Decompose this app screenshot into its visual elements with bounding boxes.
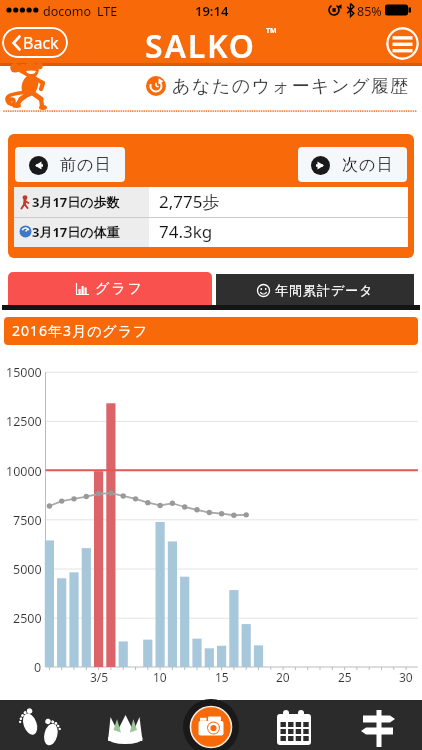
staticText: 10000 [6,463,42,479]
staticText: 0 [34,659,42,675]
staticText: あなたのウォーキング履歴 [172,75,410,98]
button[interactable] [270,702,320,748]
staticText: 7500 [13,512,42,528]
button[interactable]: 年間累計データ [216,274,414,305]
staticText: 12500 [6,413,42,429]
staticText: 前の日 [60,155,112,175]
staticText: 15 [215,669,229,685]
button[interactable]: グラフ [8,272,212,305]
button[interactable] [183,698,239,750]
button[interactable] [16,702,66,748]
staticText: 3/5 [90,669,109,685]
staticText: 85% [357,3,382,20]
staticText: 5000 [13,561,42,577]
staticText: 3月17日の体重 [32,223,120,241]
staticText: TM [266,26,277,36]
staticText: 74.3kg [159,220,213,243]
staticText: 20 [276,669,290,685]
button[interactable]: Back [2,27,68,58]
staticText: Back [23,32,59,54]
staticText: グラフ [95,280,144,298]
staticText: 25 [338,669,352,685]
staticText: 次の日 [342,155,394,175]
staticText: LTE [97,3,118,20]
button[interactable] [100,702,150,748]
staticText: SALKO [145,24,256,68]
staticText: docomo [43,3,92,20]
staticText: 19:14 [195,2,229,20]
button[interactable] [386,27,419,60]
button[interactable] [354,702,404,748]
staticText: 3月17日の歩数 [32,193,120,211]
staticText: 2500 [13,610,42,626]
staticText: 年間累計データ [275,282,374,298]
staticText: 10 [153,669,167,685]
staticText: 15000 [6,364,42,380]
button[interactable]: 前の日 [15,147,125,182]
staticText: 2,775歩 [159,190,220,213]
staticText: 30 [399,669,413,685]
button[interactable]: 次の日 [298,147,407,182]
staticText: 2016年3月のグラフ [12,321,149,340]
